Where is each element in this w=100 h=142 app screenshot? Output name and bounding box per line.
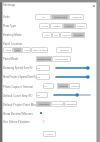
staticText: Drawing Speed (km/h)	[3, 66, 33, 70]
button[interactable]: Garden	[50, 23, 63, 29]
staticText: Garden	[53, 25, 61, 28]
button[interactable]: Use Online Elevation	[40, 118, 46, 124]
staticText: Auto	[44, 34, 50, 37]
staticText: Off	[54, 34, 58, 37]
button[interactable]: Imperial	[69, 14, 84, 20]
staticText: Straight Line	[37, 58, 51, 61]
staticText: Heating Mode	[3, 33, 22, 37]
staticText: Seconds	[59, 85, 68, 88]
staticText: Hybrid	[65, 25, 73, 28]
button[interactable]: Hybrid	[63, 23, 75, 29]
button[interactable]: None	[3, 47, 13, 53]
button[interactable]: New Project Speed	[54, 74, 91, 80]
button[interactable]: Back to Start	[31, 47, 48, 53]
staticText: None	[5, 49, 11, 52]
staticText: Paint Mode	[3, 57, 18, 61]
staticText: 5.0	[37, 76, 41, 79]
staticText: Use Online Elevation	[3, 120, 31, 124]
button[interactable]: Seconds	[57, 83, 69, 89]
button[interactable]: Off	[52, 32, 60, 38]
button[interactable]: Meters	[69, 83, 80, 89]
button[interactable]: Metric (Km)	[51, 14, 69, 20]
button[interactable]: US	[35, 14, 51, 20]
staticText: Show Decimal Minutes	[3, 112, 33, 116]
staticText: Meters	[71, 85, 79, 88]
staticText: Default Curve Step (%)	[3, 94, 33, 98]
button[interactable]: None	[39, 23, 50, 29]
staticText: Photo Capture Interval	[3, 85, 33, 89]
staticText: Thick Film	[52, 103, 63, 106]
button[interactable]: Show Decimal Minutes	[38, 110, 44, 116]
staticText: Manual	[62, 34, 71, 37]
staticText: Wall	[15, 49, 20, 52]
staticText: Tempo	[77, 25, 85, 28]
button[interactable]: Close	[43, 131, 56, 137]
staticText: Default Project Paint Mode	[3, 103, 39, 107]
staticText: US	[42, 16, 45, 19]
staticText: Custom	[74, 34, 83, 37]
staticText: Standard	[39, 103, 49, 106]
button[interactable]: Tempo	[75, 23, 87, 29]
button[interactable]: Close window	[91, 3, 97, 9]
staticText: Panel Location	[3, 42, 23, 46]
staticText: New Project Speed (km/h)	[3, 75, 37, 79]
staticText: Back to Start	[33, 49, 47, 52]
button[interactable]: Straight Line	[36, 56, 52, 62]
staticText: Metric (Km)	[54, 16, 67, 19]
staticText: 5.0	[37, 67, 41, 70]
staticText: Adjustable	[65, 103, 77, 106]
button[interactable]: Thick Film	[51, 101, 64, 107]
staticText: Settings	[3, 3, 16, 7]
button[interactable]: Value 10	[43, 83, 54, 89]
button[interactable]: Manual	[60, 32, 72, 38]
staticText: Close	[47, 133, 53, 136]
button[interactable]: Custom	[72, 32, 85, 38]
button[interactable]: Auto	[42, 32, 52, 38]
staticText: Flow Type	[3, 24, 16, 28]
staticText: None	[42, 25, 48, 28]
button[interactable]: Value 20	[36, 92, 48, 98]
button[interactable]: Wall	[13, 47, 22, 53]
staticText: 20	[37, 94, 40, 97]
staticText: Install Here	[55, 58, 68, 61]
button[interactable]: Value 5.0	[36, 74, 50, 80]
staticText: Remove	[60, 49, 69, 52]
button[interactable]: Land	[22, 47, 31, 53]
button[interactable]: Default Curve Step	[52, 92, 92, 98]
staticText: Imperial	[72, 16, 82, 19]
staticText: 10	[44, 85, 47, 88]
button[interactable]: Standard	[36, 101, 51, 107]
button[interactable]: Install Here	[52, 56, 71, 62]
staticText: Units	[3, 15, 10, 19]
button[interactable]: Drawing Speed	[54, 65, 91, 71]
staticText: Land	[24, 49, 30, 52]
button[interactable]: Value 5.0	[36, 65, 50, 71]
button[interactable]: Adjustable	[64, 101, 77, 107]
button[interactable]: Remove	[56, 47, 72, 53]
